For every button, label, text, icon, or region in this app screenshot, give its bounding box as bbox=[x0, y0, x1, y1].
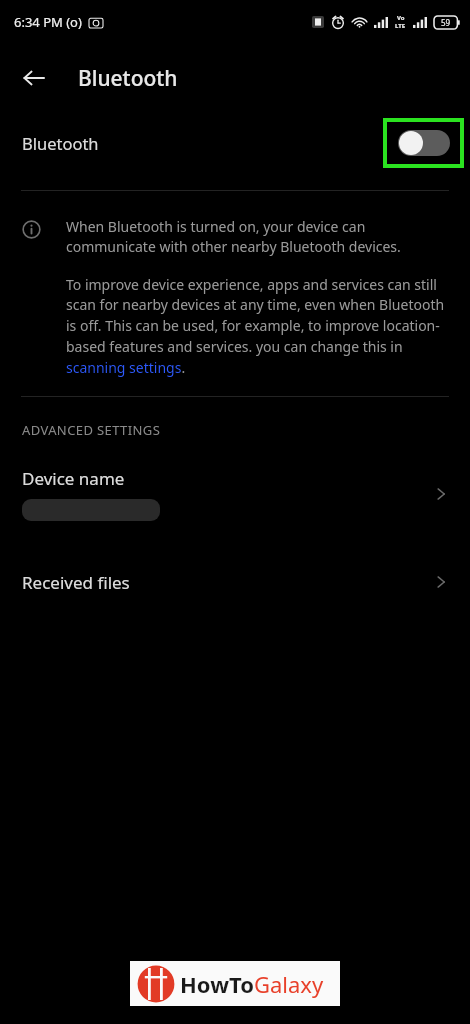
staticText: ADVANCED SETTINGS bbox=[22, 421, 161, 439]
staticText: When Bluetooth is turned on, your device… bbox=[66, 217, 448, 257]
staticText: Device name bbox=[22, 467, 125, 490]
button[interactable]: Bluetooth bbox=[0, 112, 470, 174]
staticText: Bluetooth bbox=[22, 132, 99, 154]
button[interactable]: Received files bbox=[0, 545, 470, 619]
staticText: 6:34 PM (o) bbox=[14, 13, 82, 31]
staticText: HowToGalaxy bbox=[180, 969, 324, 999]
staticText: Received files bbox=[22, 571, 432, 594]
button[interactable]: Back bbox=[10, 54, 58, 102]
button[interactable]: Bluetooth toggle bbox=[383, 118, 464, 168]
staticText: LTE bbox=[395, 22, 406, 30]
staticText: Bluetooth bbox=[78, 64, 178, 93]
staticText: 59 bbox=[441, 17, 451, 28]
staticText: Vo bbox=[397, 14, 405, 22]
staticText: To improve device experience, apps and s… bbox=[66, 275, 448, 378]
button[interactable]: Device name bbox=[0, 443, 470, 545]
